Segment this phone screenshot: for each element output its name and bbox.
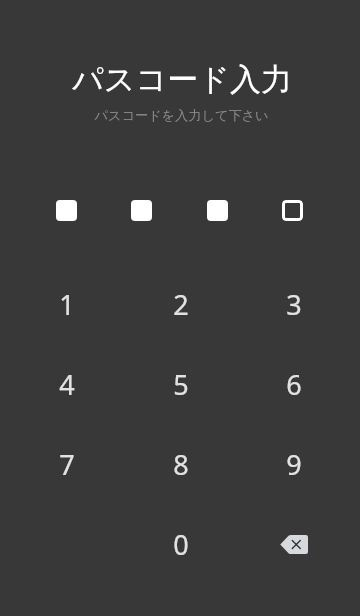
staticText: 4 xyxy=(59,366,75,403)
staticText: 2 xyxy=(173,286,189,323)
button[interactable]: 6 xyxy=(237,344,350,424)
staticText: 1 xyxy=(59,286,75,323)
button[interactable]: 3 xyxy=(237,264,350,344)
staticText: 0 xyxy=(173,526,189,563)
button[interactable]: 1 xyxy=(10,264,124,344)
button[interactable]: 2 xyxy=(124,264,237,344)
staticText: 3 xyxy=(286,286,302,323)
button[interactable]: 0 xyxy=(124,504,237,584)
button[interactable]: 9 xyxy=(237,424,350,504)
staticText: パスコード入力 xyxy=(4,60,360,99)
staticText: パスコードを入力して下さい xyxy=(3,107,360,124)
staticText: 6 xyxy=(286,366,302,403)
staticText: 5 xyxy=(173,366,189,403)
button[interactable]: 7 xyxy=(10,424,124,504)
button[interactable]: 5 xyxy=(124,344,237,424)
staticText: 8 xyxy=(173,446,189,483)
staticText: 7 xyxy=(59,446,75,483)
button[interactable]: 4 xyxy=(10,344,124,424)
button[interactable]: 8 xyxy=(124,424,237,504)
staticText: 9 xyxy=(286,446,302,483)
button[interactable]: Backspace xyxy=(237,504,350,584)
